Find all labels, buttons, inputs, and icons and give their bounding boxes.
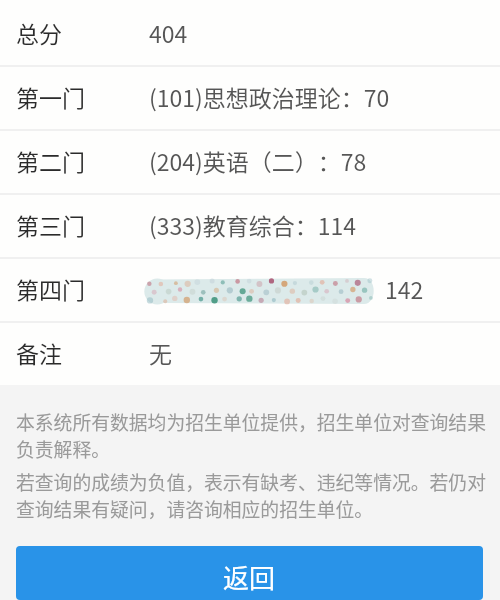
staticText: 返回: [223, 558, 276, 596]
staticText: 第三门: [16, 208, 85, 241]
button[interactable]: 第一门: [0, 64, 500, 128]
staticText: (204)英语（二）：78: [149, 144, 367, 177]
button[interactable]: 返回: [16, 546, 483, 600]
staticText: 404: [149, 16, 188, 49]
staticText: (101)思想政治理论：70: [149, 80, 390, 113]
staticText: 若查询的成绩为负值，表示有缺考、违纪等情况。若仍对查询结果有疑问，请咨询相应的招…: [16, 468, 490, 523]
staticText: 总分: [16, 16, 62, 49]
staticText: 第二门: [16, 144, 85, 177]
staticText: 第四门: [16, 272, 85, 305]
other: 已遮挡的科目名称: [143, 278, 377, 304]
button[interactable]: 第三门: [0, 192, 500, 256]
button[interactable]: 备注: [0, 320, 500, 384]
staticText: 无: [149, 336, 172, 369]
staticText: 142: [385, 272, 424, 305]
staticText: 第一门: [16, 80, 85, 113]
button[interactable]: 第四门: [0, 256, 500, 320]
button[interactable]: 总分: [0, 0, 500, 64]
staticText: (333)教育综合：114: [149, 208, 357, 241]
button[interactable]: 第二门: [0, 128, 500, 192]
staticText: 本系统所有数据均为招生单位提供，招生单位对查询结果负责解释。: [16, 408, 490, 463]
staticText: 备注: [16, 336, 62, 369]
